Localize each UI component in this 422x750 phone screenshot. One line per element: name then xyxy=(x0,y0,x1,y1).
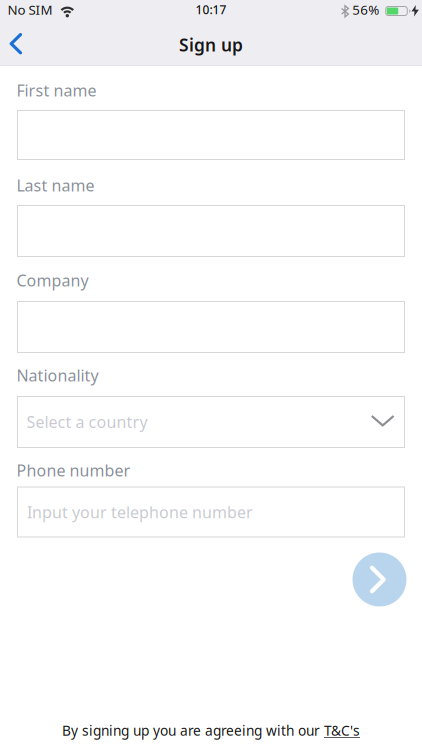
staticText: Phone number xyxy=(16,460,130,481)
staticText: Select a country xyxy=(27,411,148,432)
staticText: Company xyxy=(16,270,88,291)
button[interactable]: Company xyxy=(17,301,405,353)
staticText: First name xyxy=(16,80,96,101)
button[interactable]: Next xyxy=(352,552,406,606)
button[interactable]: T&C's xyxy=(324,721,360,740)
staticText: By signing up you are agreeing with our xyxy=(62,721,324,740)
button[interactable]: Last name xyxy=(17,205,405,257)
staticText: Sign up xyxy=(179,33,243,56)
button[interactable]: Phone number xyxy=(17,486,405,537)
staticText: No SIM xyxy=(8,1,53,18)
button[interactable]: First name xyxy=(17,110,405,160)
button[interactable]: Back xyxy=(0,0,43,65)
staticText: 10:17 xyxy=(195,1,226,18)
staticText: T&C's xyxy=(324,721,360,740)
staticText: 56% xyxy=(352,1,379,18)
staticText: Input your telephone number xyxy=(27,501,253,523)
button[interactable]: Select a country xyxy=(17,396,405,448)
staticText: Last name xyxy=(16,175,94,196)
staticText: Nationality xyxy=(16,365,98,386)
